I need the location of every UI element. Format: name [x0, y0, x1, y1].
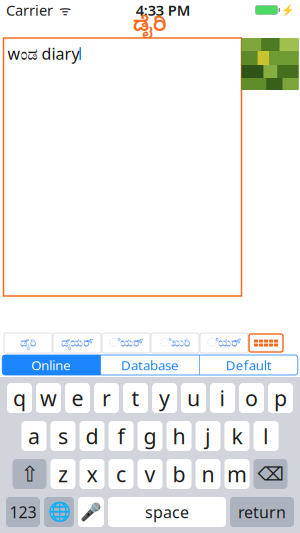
staticText: o [245, 384, 258, 412]
staticText: wಂಡ diary [7, 43, 79, 64]
button[interactable]: y [152, 383, 177, 413]
staticText: h [172, 422, 185, 450]
button[interactable]: m [224, 459, 249, 489]
staticText: 🌐 [47, 501, 70, 523]
button[interactable]: h [166, 421, 191, 451]
staticText: m [227, 460, 247, 488]
button[interactable]: Dictation [78, 497, 104, 527]
button[interactable]: z [50, 459, 75, 489]
button[interactable]: ಡೈರಿ [4, 333, 52, 353]
staticText: c [116, 460, 126, 488]
staticText: d [85, 422, 98, 450]
button[interactable]: d [79, 421, 104, 451]
staticText: v [144, 460, 155, 488]
staticText: k [231, 422, 242, 450]
button[interactable]: o [239, 383, 264, 413]
button[interactable]: Database [101, 355, 199, 375]
button[interactable]: Shift [12, 459, 46, 489]
staticText: ಡೈರಿ [133, 15, 167, 41]
staticText: x [86, 460, 97, 488]
staticText: l [263, 422, 269, 450]
staticText: Online [31, 356, 71, 374]
staticText: y [159, 384, 170, 412]
staticText: ᯤ [53, 1, 71, 19]
staticText: s [58, 422, 68, 450]
staticText: ಿಯರ್ [207, 337, 241, 349]
button[interactable]: c [108, 459, 133, 489]
staticText: i [219, 384, 225, 412]
button[interactable]: ಡೈಯರ್ [53, 333, 101, 353]
staticText: 🎤 [80, 502, 102, 522]
staticText: ಡೈಯರ್ [61, 337, 93, 349]
button[interactable]: r [94, 383, 119, 413]
staticText: Database [121, 356, 179, 374]
staticText: q [13, 384, 26, 412]
staticText: ಿಯರ್ [109, 337, 143, 349]
staticText: space [145, 501, 189, 523]
button[interactable]: v [137, 459, 162, 489]
button[interactable]: Online [2, 355, 100, 375]
button[interactable]: ಿಖುರಿ [151, 333, 199, 353]
button[interactable]: Keyboard settings [249, 334, 283, 352]
button[interactable]: q [7, 383, 32, 413]
button[interactable]: ಿಯರ್ [102, 333, 150, 353]
button[interactable]: a [21, 421, 46, 451]
staticText: Carrier [6, 0, 53, 20]
staticText: ⚡ [281, 4, 294, 16]
staticText: ಡೈರಿ [20, 337, 36, 349]
button[interactable]: u [181, 383, 206, 413]
button[interactable]: f [108, 421, 133, 451]
button[interactable]: t [123, 383, 148, 413]
staticText: return [238, 501, 286, 523]
staticText: u [187, 384, 200, 412]
button[interactable]: i [210, 383, 235, 413]
staticText: g [143, 422, 156, 450]
staticText: a [28, 422, 40, 450]
button[interactable]: g [137, 421, 162, 451]
button[interactable]: Next keyboard [44, 497, 74, 527]
button[interactable]: space [108, 497, 226, 527]
staticText: 4:33 PM [136, 0, 191, 20]
staticText: Default [226, 356, 272, 374]
staticText: f [117, 422, 124, 450]
button[interactable]: p [268, 383, 293, 413]
staticText: r [102, 384, 111, 412]
button[interactable]: 123 [6, 497, 40, 527]
button[interactable]: Delete [253, 459, 287, 489]
button[interactable]: l [253, 421, 278, 451]
button[interactable]: e [65, 383, 90, 413]
button[interactable]: k [224, 421, 249, 451]
button[interactable]: ಿಯರ್ [200, 333, 248, 353]
button[interactable]: Default [200, 355, 298, 375]
button[interactable]: return [230, 497, 294, 527]
button[interactable]: w [36, 383, 61, 413]
button[interactable]: b [166, 459, 191, 489]
button[interactable]: n [195, 459, 220, 489]
button[interactable]: j [195, 421, 220, 451]
staticText: ⌫ [257, 463, 283, 485]
staticText: 123 [9, 501, 36, 523]
staticText: e [71, 384, 83, 412]
staticText: j [205, 422, 211, 450]
staticText: n [201, 460, 214, 488]
staticText: ಿಖುರಿ [160, 337, 190, 349]
staticText: b [172, 460, 185, 488]
staticText: p [274, 384, 287, 412]
button[interactable]: x [79, 459, 104, 489]
staticText: t [131, 384, 139, 412]
staticText: z [58, 460, 68, 488]
staticText: w [40, 384, 57, 412]
button[interactable]: s [50, 421, 75, 451]
staticText: ⇧ [20, 462, 38, 486]
